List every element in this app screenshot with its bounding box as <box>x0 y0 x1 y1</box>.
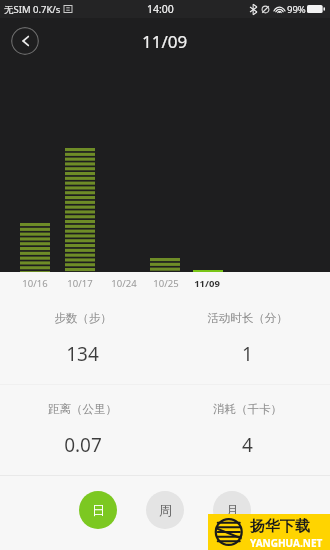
staticText: 消耗（千卡） <box>213 402 282 416</box>
staticText: 10/17 <box>67 277 93 290</box>
staticText: 0.07 <box>64 432 102 458</box>
button[interactable]: 步数（步） <box>0 294 165 384</box>
staticText: 周 <box>159 502 172 518</box>
staticText: 距离（公里） <box>48 402 117 416</box>
button[interactable]: Back <box>11 27 39 55</box>
button[interactable]: 距离（公里） <box>0 385 165 475</box>
staticText: 10/24 <box>111 277 137 290</box>
staticText: 扬华下载 <box>250 517 310 536</box>
staticText: 11/09 <box>142 30 188 53</box>
staticText: 月 <box>226 502 239 518</box>
button[interactable]: 周 <box>146 491 184 529</box>
staticText: 步数（步） <box>54 311 112 325</box>
staticText: 4 <box>242 432 253 458</box>
staticText: 14:00 <box>147 2 174 16</box>
staticText: 日 <box>92 502 105 518</box>
button[interactable]: 日 <box>79 491 117 529</box>
staticText: 无SIM 0.7K/s <box>4 3 61 16</box>
button[interactable]: 活动时长（分） <box>165 294 330 384</box>
staticText: 10/25 <box>153 277 179 290</box>
staticText: 1 <box>242 341 253 367</box>
staticText: 134 <box>66 341 99 367</box>
staticText: 99% <box>287 3 306 16</box>
button[interactable]: 消耗（千卡） <box>165 385 330 475</box>
button[interactable]: 月 <box>213 491 251 529</box>
staticText: 11/09 <box>194 277 220 290</box>
staticText: 活动时长（分） <box>207 311 288 325</box>
staticText: YANGHUA.NET <box>250 536 323 550</box>
staticText: 10/16 <box>22 277 48 290</box>
